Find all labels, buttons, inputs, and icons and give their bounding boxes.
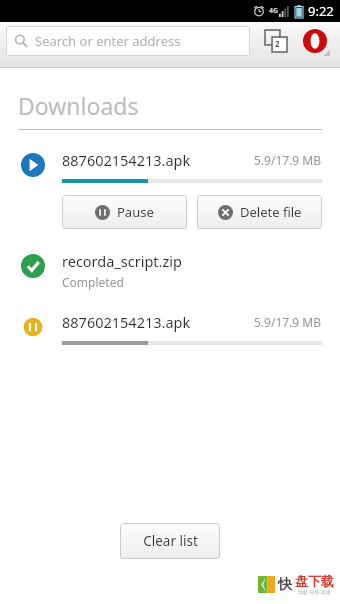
staticText: 887602154213.apk (62, 312, 191, 332)
button[interactable]: 887602154213.apk (0, 150, 340, 183)
staticText: recorda_script.zip (62, 251, 182, 271)
staticText: 盘下载 (295, 573, 334, 589)
staticText: Search or enter address (35, 32, 181, 50)
staticText: 887602154213.apk (62, 150, 191, 170)
staticText: 导航·分享·高速 (298, 589, 331, 596)
button[interactable]: Search or enter address (6, 26, 250, 56)
button[interactable]: recorda_script.zip (0, 251, 340, 290)
staticText: 5.9/17.9 MB (254, 152, 322, 168)
staticText: Completed (62, 274, 124, 290)
button[interactable]: Delete file (197, 195, 322, 229)
button[interactable]: Open tabs, 2 tabs (258, 23, 294, 59)
staticText: 9:22 (308, 2, 334, 20)
staticText: Clear list (143, 532, 198, 550)
staticText: 4G (269, 6, 279, 16)
staticText: 5.9/17.9 MB (254, 314, 322, 330)
staticText: Delete file (240, 203, 302, 221)
button[interactable]: Pause (62, 195, 187, 229)
staticText: 快 (278, 576, 292, 594)
staticText: 2 (275, 38, 280, 49)
button[interactable]: 887602154213.apk (0, 312, 340, 345)
button[interactable]: Clear list (120, 523, 220, 559)
button[interactable]: Opera menu (296, 22, 334, 60)
staticText: Pause (117, 203, 154, 221)
staticText: Downloads (18, 90, 139, 121)
